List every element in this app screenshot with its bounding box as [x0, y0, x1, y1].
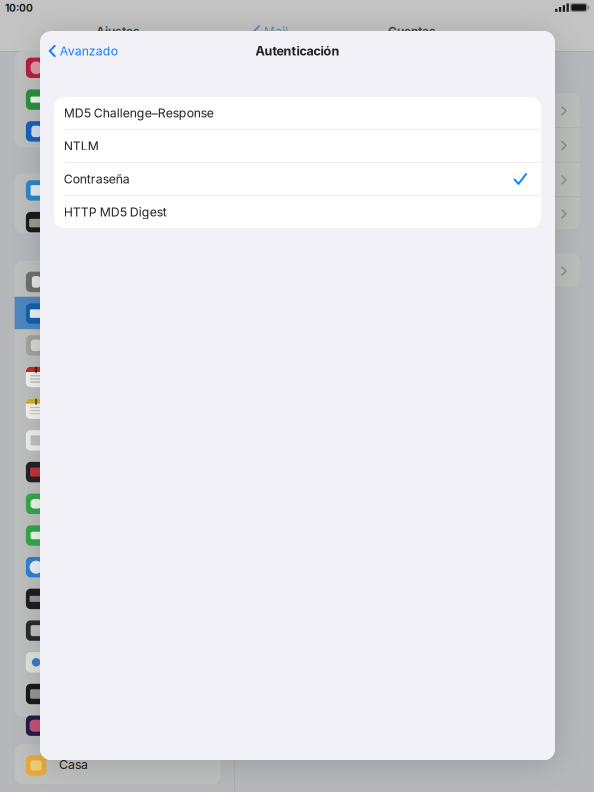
staticText: Mail — [264, 24, 288, 39]
staticText: Ajustes — [96, 24, 140, 39]
button[interactable]: MD5 Challenge–Response — [54, 97, 541, 129]
staticText: HTTP MD5 Digest — [64, 204, 167, 219]
staticText: MD5 Challenge–Response — [64, 106, 214, 120]
staticText: 10:00 — [5, 2, 33, 14]
staticText: NTLM — [64, 139, 99, 153]
staticText: Cuentas — [388, 24, 436, 39]
staticText: Avanzado — [60, 44, 118, 58]
button[interactable]: Contraseña — [54, 163, 541, 195]
staticText: Casa — [59, 757, 88, 772]
button[interactable]: Avanzado — [40, 31, 128, 71]
button[interactable]: NTLM — [54, 130, 541, 162]
staticText: Autenticación — [255, 43, 339, 59]
button[interactable]: HTTP MD5 Digest — [54, 196, 541, 228]
staticText: Contraseña — [64, 172, 130, 186]
